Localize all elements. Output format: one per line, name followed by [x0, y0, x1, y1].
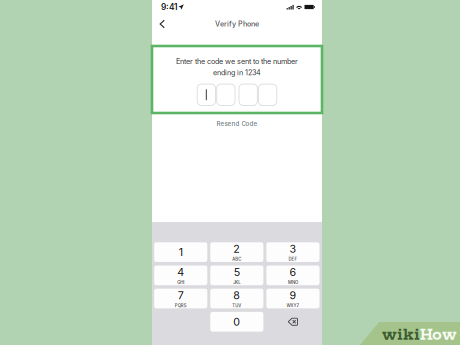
staticText: Enter the code we sent to the number: [176, 57, 298, 66]
button[interactable]: 3: [266, 242, 319, 262]
button[interactable]: Delete: [266, 312, 319, 332]
staticText: 0: [233, 315, 240, 328]
staticText: Verify Phone: [215, 20, 259, 28]
staticText: ABC: [232, 257, 241, 262]
button[interactable]: 6: [266, 265, 319, 285]
staticText: wiki: [382, 325, 420, 343]
staticText: WXYZ: [286, 303, 299, 308]
button[interactable]: 1: [154, 242, 207, 262]
staticText: GHI: [177, 280, 184, 285]
staticText: How: [420, 325, 457, 343]
button[interactable]: 9: [266, 289, 319, 308]
staticText: 2: [233, 242, 240, 255]
staticText: 7: [178, 289, 184, 302]
button[interactable]: 2: [210, 242, 263, 262]
button[interactable]: 0: [210, 312, 263, 332]
staticText: 4: [177, 266, 184, 279]
staticText: 6: [289, 266, 296, 279]
staticText: DEF: [288, 257, 297, 262]
staticText: 9: [289, 289, 296, 302]
staticText: 8: [233, 289, 240, 302]
staticText: JKL: [233, 280, 240, 285]
staticText: 1: [179, 246, 183, 259]
staticText: TUV: [232, 303, 241, 308]
button[interactable]: 7: [154, 289, 207, 308]
button[interactable]: 4: [154, 265, 207, 285]
button[interactable]: Resend Code: [152, 113, 322, 132]
staticText: MNO: [288, 280, 298, 285]
staticText: 9:41: [161, 2, 177, 12]
button[interactable]: 5: [210, 265, 263, 285]
staticText: PQRS: [175, 303, 187, 308]
staticText: 5: [234, 266, 240, 279]
button[interactable]: 8: [210, 289, 263, 308]
button[interactable]: Back: [152, 14, 171, 34]
staticText: Resend Code: [216, 120, 257, 127]
staticText: ending in 1234: [213, 68, 261, 77]
staticText: 3: [289, 242, 296, 255]
